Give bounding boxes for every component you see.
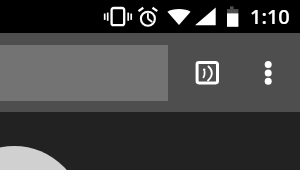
staticText: 1:10 bbox=[250, 3, 290, 30]
button[interactable]: More options bbox=[254, 43, 283, 93]
button[interactable]: Insert emoticon bbox=[186, 54, 229, 97]
